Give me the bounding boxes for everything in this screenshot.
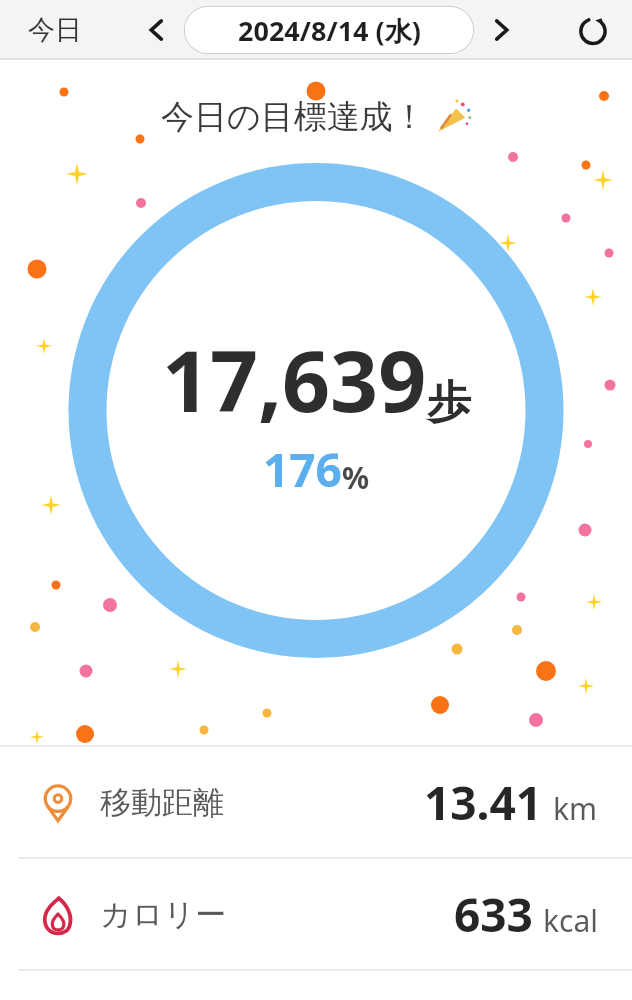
staticText: 17,639: [162, 322, 427, 436]
staticText: 今日: [28, 13, 82, 47]
staticText: 176: [263, 438, 342, 501]
button[interactable]: Next day: [480, 9, 522, 51]
button[interactable]: 2024/8/14 (水): [184, 6, 474, 54]
staticText: カロリー: [100, 895, 227, 934]
button[interactable]: Previous day: [136, 9, 178, 51]
other: Calories: [36, 893, 80, 937]
staticText: 歩: [427, 375, 471, 430]
staticText: 633: [454, 883, 533, 946]
button[interactable]: 今日: [14, 7, 96, 53]
staticText: 今日の目標達成！: [161, 96, 426, 138]
staticText: 13.41: [424, 771, 543, 834]
staticText: km: [553, 788, 598, 829]
staticText: 移動距離: [100, 783, 224, 822]
other: Distance: [36, 781, 80, 825]
staticText: 2024/8/14 (水): [238, 12, 421, 49]
button[interactable]: Calories: [0, 859, 632, 970]
button[interactable]: Distance: [0, 747, 632, 858]
button[interactable]: Refresh: [568, 5, 618, 55]
staticText: kcal: [543, 900, 598, 941]
staticText: %: [342, 457, 370, 498]
